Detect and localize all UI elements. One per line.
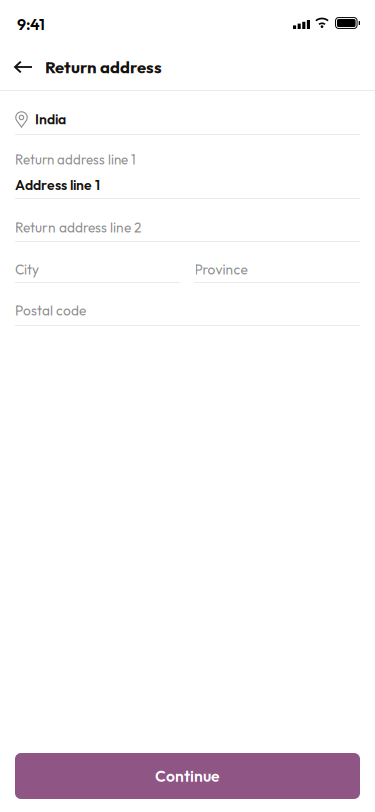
- button[interactable]: Province: [194, 242, 360, 283]
- button[interactable]: Continue: [15, 753, 360, 799]
- button[interactable]: India: [15, 91, 360, 135]
- button[interactable]: Return address line 2: [15, 199, 360, 242]
- staticText: Return address line 2: [15, 219, 141, 236]
- staticText: Continue: [155, 766, 220, 786]
- staticText: Return address line 1: [15, 151, 136, 168]
- staticText: India: [35, 110, 66, 128]
- button[interactable]: Return address line 1: [15, 135, 360, 199]
- staticText: 9:41: [17, 14, 45, 34]
- button[interactable]: City: [15, 242, 180, 283]
- button[interactable]: Postal code: [15, 283, 360, 326]
- staticText: Address line 1: [15, 176, 100, 194]
- staticText: Return address: [45, 56, 162, 77]
- staticText: Province: [194, 261, 247, 278]
- staticText: City: [15, 261, 39, 278]
- button[interactable]: Back: [0, 44, 45, 90]
- staticText: Postal code: [15, 302, 86, 319]
